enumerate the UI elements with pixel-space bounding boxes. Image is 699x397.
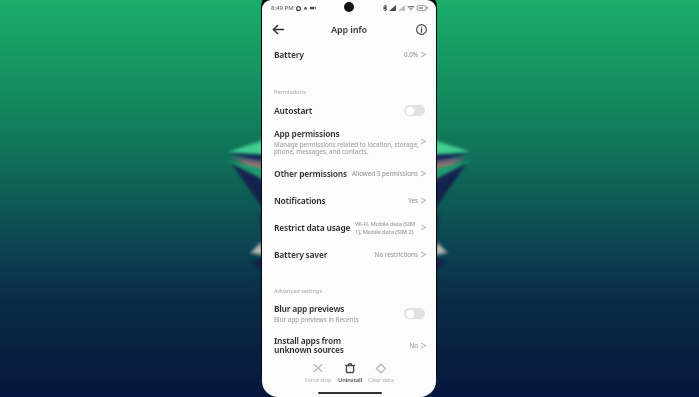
staticText: No restrictions	[369, 250, 418, 259]
staticText: Uninstall	[338, 376, 363, 384]
button[interactable]: Restrict data usage	[262, 214, 436, 241]
staticText: Advanced settings	[274, 287, 323, 295]
staticText: Clear data	[368, 376, 394, 384]
button[interactable]: Battery saver	[262, 243, 436, 265]
staticText: 0.0%	[389, 50, 418, 59]
staticText: App permissions	[274, 128, 340, 139]
staticText: Blur app previews in Recents	[274, 315, 359, 324]
button[interactable]: Install apps from unknown sources	[262, 333, 436, 357]
staticText: Force stop	[305, 376, 332, 384]
staticText: Blur app previews	[274, 303, 345, 314]
staticText: Yes	[397, 196, 418, 205]
button[interactable]: Uninstall	[333, 362, 367, 384]
staticText: 8:49 PM	[271, 4, 294, 12]
button[interactable]: Force stop	[301, 362, 335, 384]
staticText: App info	[331, 23, 367, 35]
staticText: Battery saver	[274, 249, 328, 260]
button[interactable]: Battery	[262, 43, 436, 65]
staticText: Restrict data usage	[274, 222, 351, 233]
staticText: Manage permissions related to location, …	[274, 140, 421, 156]
staticText: No	[401, 341, 418, 350]
staticText: Permissions	[274, 88, 306, 96]
staticText: Autostart	[274, 105, 313, 116]
staticText: Other permissions	[274, 168, 348, 179]
button[interactable]: App details	[413, 21, 429, 37]
button[interactable]: Notifications	[262, 189, 436, 211]
button[interactable]: Blur app previews	[262, 302, 436, 324]
button[interactable]: Autostart	[262, 99, 436, 121]
staticText: Install apps from unknown sources	[274, 335, 358, 356]
staticText: Notifications	[274, 195, 326, 206]
button[interactable]: Back	[269, 20, 287, 38]
button[interactable]: Other permissions	[262, 162, 436, 184]
staticText: Wi-Fi, Mobile data (SIM 1), Mobile data …	[355, 220, 418, 236]
button[interactable]: Clear data	[364, 362, 398, 384]
staticText: Battery	[274, 49, 304, 60]
button[interactable]: App permissions	[262, 125, 436, 158]
staticText: Allowed 3 permissions	[351, 169, 418, 178]
